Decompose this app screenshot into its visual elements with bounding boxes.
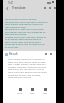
staticText: 9:41 xyxy=(8,1,14,5)
staticText: feels human to most xyxy=(5,26,27,29)
staticText: cheaper compute combined into one xyxy=(8,66,46,69)
staticText: write natural language at a level that xyxy=(5,23,43,26)
staticText: The change came from a handful of xyxy=(8,58,45,61)
button[interactable]: Copy xyxy=(43,51,49,57)
staticText: Share xyxy=(17,92,23,94)
staticText: Translate xyxy=(12,6,26,10)
staticText: single day at work and at home too for xyxy=(5,43,45,46)
staticText: single day at work and at home, xyxy=(8,74,41,77)
button[interactable]: Share xyxy=(13,86,26,94)
staticText: Save xyxy=(43,92,48,94)
button[interactable]: Back xyxy=(4,5,11,12)
button[interactable]: Copy xyxy=(26,86,39,94)
staticText: often without noticing. xyxy=(8,76,32,79)
button[interactable]: Search xyxy=(42,5,48,11)
staticText: many of the tasks that we do every xyxy=(5,41,41,44)
staticText: new thing, and the result is a set of xyxy=(8,68,44,71)
staticText: tools that many people now use every xyxy=(8,71,47,74)
staticText: word for word a line of sample xyxy=(5,18,37,21)
staticText: us as models keep getting better at xyxy=(5,38,42,41)
staticText: forward from here in the years ahead of xyxy=(5,36,47,39)
staticText: Copy xyxy=(30,92,35,94)
button[interactable]: More options xyxy=(52,5,58,11)
staticText: own. Larger models, better data and xyxy=(8,63,46,66)
staticText: all of us now xyxy=(5,46,18,49)
button[interactable]: Bookmark xyxy=(47,5,53,11)
staticText: expected with tools now able to read and xyxy=(5,21,48,24)
button[interactable]: More options xyxy=(48,51,54,57)
staticText: ideas that each looked small on their xyxy=(8,61,46,64)
staticText: people who try them for the first time xyxy=(5,28,44,31)
button[interactable]: Save xyxy=(39,86,52,94)
staticText: Result xyxy=(9,52,18,56)
staticText: everyday work going xyxy=(5,33,27,36)
staticText: and explain how this shift happened for xyxy=(5,31,46,34)
